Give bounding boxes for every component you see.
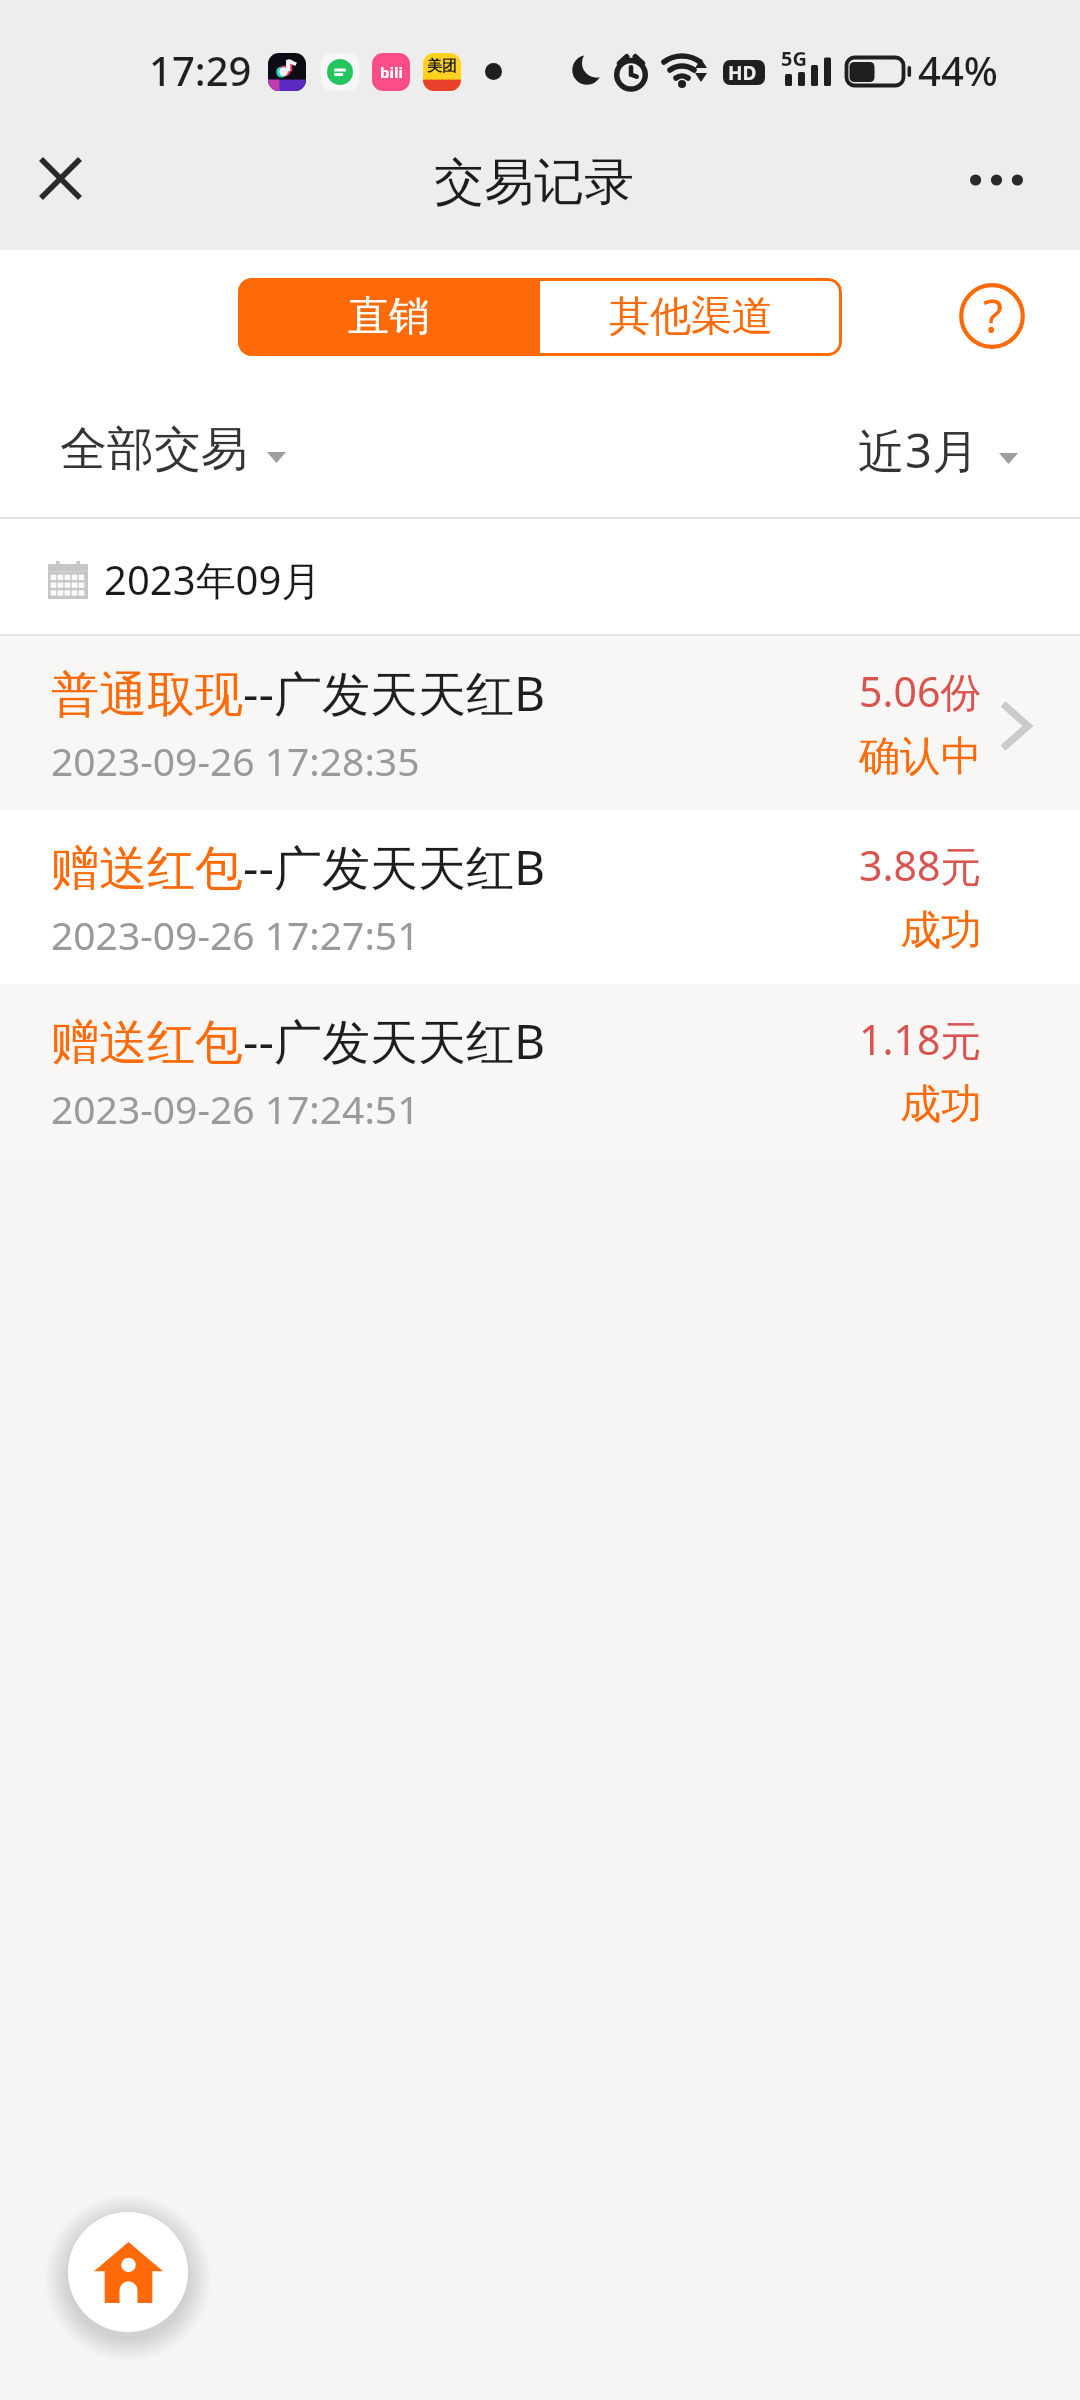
staticText: HD: [728, 60, 757, 85]
staticText: 直销: [348, 291, 430, 343]
staticText: 普通取现--广发天天红B: [51, 660, 546, 726]
staticText: 交易记录: [434, 151, 634, 214]
button[interactable]: 其他渠道: [540, 278, 842, 356]
button[interactable]: 直销: [238, 278, 540, 356]
staticText: 2023-09-26 17:27:51: [51, 908, 420, 961]
staticText: 确认中: [859, 731, 982, 783]
button[interactable]: 赠送红包--广发天天红B: [0, 810, 1080, 984]
staticText: 美团: [427, 57, 457, 76]
staticText: 5.06份: [859, 663, 982, 719]
staticText: 3.88元: [859, 837, 982, 893]
button[interactable]: 普通取现--广发天天红B: [0, 636, 1080, 810]
staticText: 5G: [781, 45, 807, 72]
staticText: 赠送红包--广发天天红B: [51, 834, 546, 900]
button[interactable]: 全部交易: [60, 420, 286, 479]
staticText: 1.18元: [859, 1011, 982, 1067]
staticText: ?: [983, 284, 1003, 347]
staticText: 2023-09-26 17:28:35: [51, 734, 420, 787]
button[interactable]: Help: [958, 282, 1026, 350]
staticText: 44%: [918, 43, 998, 97]
staticText: 近3月: [858, 418, 979, 482]
staticText: 赠送红包--广发天天红B: [51, 1008, 546, 1074]
staticText: 2023年09月: [104, 552, 322, 607]
staticText: 成功: [900, 1079, 982, 1131]
button[interactable]: Close: [16, 134, 104, 222]
staticText: 成功: [900, 905, 982, 957]
button[interactable]: More options: [952, 136, 1040, 224]
staticText: 其他渠道: [609, 291, 773, 343]
staticText: 17:29: [149, 43, 252, 97]
staticText: bili: [380, 62, 403, 82]
button[interactable]: 赠送红包--广发天天红B: [0, 984, 1080, 1158]
staticText: 全部交易: [60, 420, 248, 479]
staticText: 2023-09-26 17:24:51: [51, 1082, 420, 1135]
button[interactable]: 近3月: [858, 418, 1018, 482]
button[interactable]: Home: [68, 2212, 188, 2332]
